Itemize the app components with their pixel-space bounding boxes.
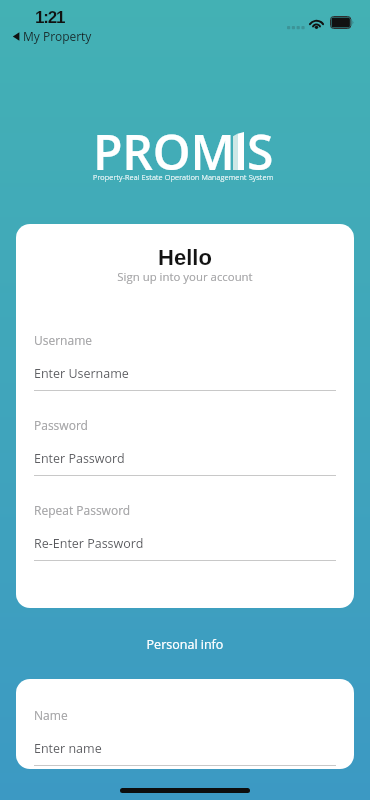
staticText: 1:21 (35, 8, 65, 27)
staticText: Name (34, 707, 68, 723)
button[interactable]: Repeat Password (34, 502, 336, 561)
staticText: Enter name (34, 740, 102, 757)
staticText: Repeat Password (34, 502, 131, 518)
staticText: Re-Enter Password (34, 535, 144, 552)
staticText: Enter Password (34, 450, 125, 467)
button[interactable]: Back to My Property (12, 28, 92, 44)
staticText: My Property (23, 28, 92, 44)
button[interactable]: Personal info (0, 636, 370, 653)
staticText: Enter Username (34, 365, 129, 382)
staticText: Hello (16, 245, 354, 270)
other: Back to My Property (12, 31, 20, 42)
button[interactable]: Password (34, 417, 336, 476)
staticText: Username (34, 332, 93, 348)
staticText: Password (34, 417, 88, 433)
button[interactable]: Name (34, 707, 336, 766)
staticText: PROM (93, 119, 235, 184)
button[interactable]: Username (34, 332, 336, 391)
staticText: Property-Real Estate Operation Managemen… (93, 172, 274, 182)
staticText: S (247, 119, 274, 184)
staticText: Sign up into your account (16, 269, 354, 285)
